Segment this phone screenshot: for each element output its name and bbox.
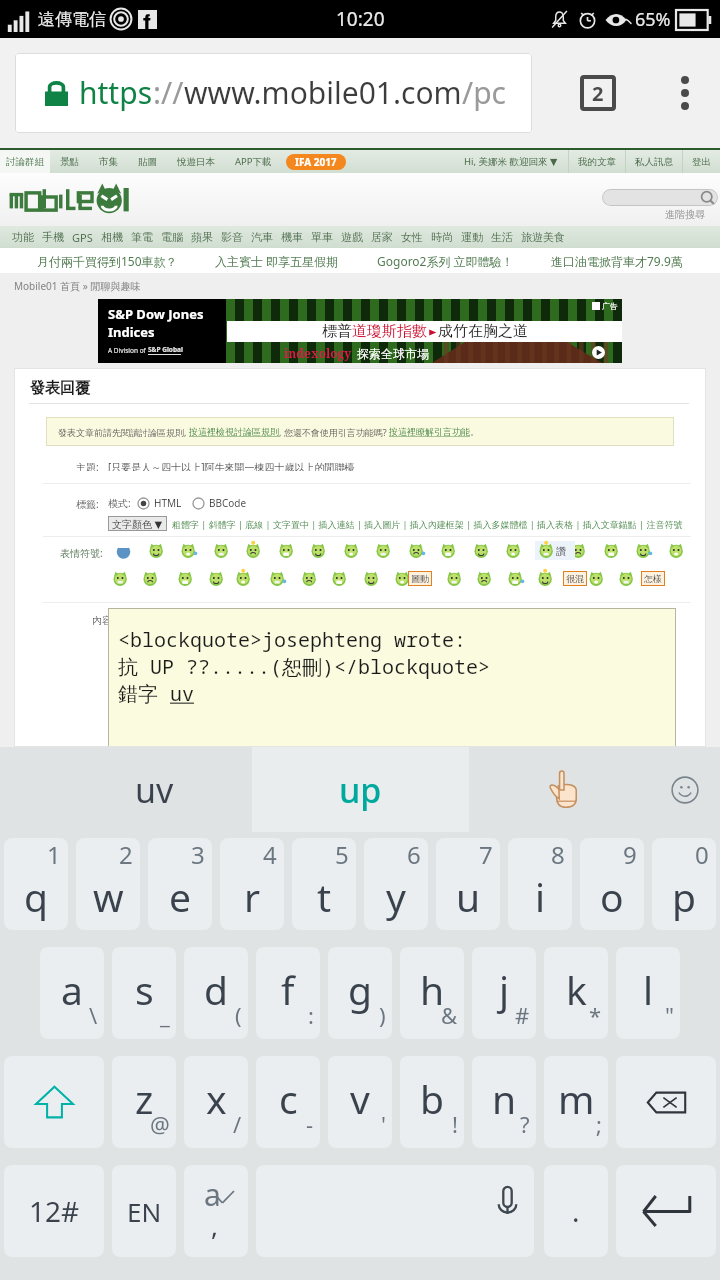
button[interactable] bbox=[177, 570, 194, 587]
button[interactable] bbox=[375, 542, 392, 559]
button[interactable] bbox=[310, 542, 327, 559]
button[interactable] bbox=[635, 542, 652, 559]
button[interactable] bbox=[112, 570, 129, 587]
button[interactable]: 居家 bbox=[371, 226, 393, 248]
button[interactable]: 0 bbox=[652, 838, 716, 930]
button[interactable]: 8 bbox=[508, 838, 572, 930]
button[interactable] bbox=[8, 185, 168, 215]
button[interactable] bbox=[588, 570, 605, 587]
button[interactable]: l bbox=[616, 947, 680, 1039]
button[interactable]: 相機 bbox=[101, 226, 123, 248]
button[interactable]: Backspace bbox=[616, 1056, 716, 1148]
button[interactable]: 1 bbox=[4, 838, 68, 930]
button[interactable]: EN bbox=[112, 1165, 176, 1257]
button[interactable]: 生活 bbox=[491, 226, 513, 248]
button[interactable] bbox=[115, 542, 132, 559]
button[interactable]: 景點 bbox=[60, 150, 79, 173]
button[interactable]: GPS bbox=[72, 226, 93, 248]
button[interactable] bbox=[235, 570, 252, 587]
button[interactable]: 遊戲 bbox=[341, 226, 363, 248]
button[interactable]: 影音 bbox=[221, 226, 243, 248]
button[interactable]: 4 bbox=[220, 838, 284, 930]
button[interactable]: uv bbox=[0, 747, 252, 832]
button[interactable] bbox=[538, 542, 555, 559]
button[interactable]: 女性 bbox=[401, 226, 423, 248]
button[interactable]: IFA 2017 bbox=[295, 154, 337, 170]
button[interactable] bbox=[343, 542, 360, 559]
button[interactable]: 旅遊美食 bbox=[521, 226, 565, 248]
button[interactable]: Space bbox=[256, 1165, 534, 1257]
button[interactable]: 運動 bbox=[461, 226, 483, 248]
button[interactable]: z bbox=[112, 1056, 176, 1148]
button[interactable]: v bbox=[328, 1056, 392, 1148]
button[interactable] bbox=[245, 542, 262, 559]
button[interactable]: 5 bbox=[292, 838, 356, 930]
button[interactable]: 功能 bbox=[12, 226, 34, 248]
button[interactable]: 討論群組 bbox=[0, 150, 50, 173]
button[interactable]: 電腦 bbox=[161, 226, 183, 248]
button[interactable]: s bbox=[112, 947, 176, 1039]
button[interactable] bbox=[473, 542, 490, 559]
button[interactable] bbox=[537, 570, 554, 587]
button[interactable]: d bbox=[184, 947, 248, 1039]
button[interactable]: 7 bbox=[436, 838, 500, 930]
button[interactable] bbox=[535, 541, 575, 560]
button[interactable]: f bbox=[256, 947, 320, 1039]
button[interactable] bbox=[301, 570, 318, 587]
button[interactable]: m bbox=[544, 1056, 608, 1148]
button[interactable] bbox=[408, 542, 425, 559]
button[interactable] bbox=[363, 570, 380, 587]
button[interactable] bbox=[213, 542, 230, 559]
button[interactable]: 機車 bbox=[281, 226, 303, 248]
button[interactable] bbox=[668, 542, 685, 559]
button[interactable] bbox=[570, 542, 587, 559]
button[interactable]: 我的文章 bbox=[578, 150, 616, 173]
button[interactable]: 市集 bbox=[99, 150, 118, 173]
button[interactable]: 蘋果 bbox=[191, 226, 213, 248]
button[interactable]: 登出 bbox=[692, 150, 711, 173]
button[interactable] bbox=[603, 542, 620, 559]
button[interactable]: APP下載 bbox=[235, 150, 272, 173]
button[interactable]: 進口油電掀背車才79.9萬 bbox=[551, 253, 683, 269]
button[interactable]: . bbox=[544, 1165, 608, 1257]
button[interactable]: 9 bbox=[580, 838, 644, 930]
button[interactable]: 6 bbox=[364, 838, 428, 930]
button[interactable] bbox=[538, 542, 555, 559]
button[interactable] bbox=[394, 570, 411, 587]
button[interactable]: j bbox=[472, 947, 536, 1039]
button[interactable] bbox=[618, 570, 635, 587]
button[interactable] bbox=[148, 542, 165, 559]
button[interactable]: 悅遊日本 bbox=[177, 150, 215, 173]
button[interactable]: n bbox=[472, 1056, 536, 1148]
button[interactable]: 入主賓士 即享五星假期 bbox=[215, 253, 339, 269]
button[interactable]: Enter bbox=[616, 1165, 716, 1257]
button[interactable]: 3 bbox=[148, 838, 212, 930]
button[interactable]: k bbox=[544, 947, 608, 1039]
button[interactable]: Search bbox=[602, 189, 718, 206]
button[interactable]: 怎樣 bbox=[644, 571, 662, 586]
button[interactable] bbox=[476, 570, 493, 587]
button[interactable]: g bbox=[328, 947, 392, 1039]
button[interactable]: 單車 bbox=[311, 226, 333, 248]
button[interactable]: 筆電 bbox=[131, 226, 153, 248]
button[interactable]: 12# bbox=[4, 1165, 104, 1257]
button[interactable]: https bbox=[15, 53, 532, 133]
button[interactable]: 貼圖 bbox=[138, 150, 157, 173]
button[interactable] bbox=[331, 570, 348, 587]
button[interactable]: h bbox=[400, 947, 464, 1039]
button[interactable] bbox=[278, 542, 295, 559]
button[interactable] bbox=[208, 570, 225, 587]
button[interactable] bbox=[142, 570, 159, 587]
button[interactable] bbox=[507, 570, 524, 587]
button[interactable]: c bbox=[256, 1056, 320, 1148]
button[interactable] bbox=[269, 570, 286, 587]
button[interactable]: Gogoro2系列 立即體驗！ bbox=[377, 253, 514, 269]
button[interactable]: Tabs bbox=[578, 73, 618, 113]
button[interactable]: More options bbox=[665, 73, 705, 113]
button[interactable]: Emoji suggestion bbox=[540, 747, 588, 832]
button[interactable] bbox=[180, 542, 197, 559]
button[interactable]: Language bbox=[184, 1165, 248, 1257]
button[interactable] bbox=[505, 542, 522, 559]
button[interactable]: a bbox=[40, 947, 104, 1039]
button[interactable]: b bbox=[400, 1056, 464, 1148]
